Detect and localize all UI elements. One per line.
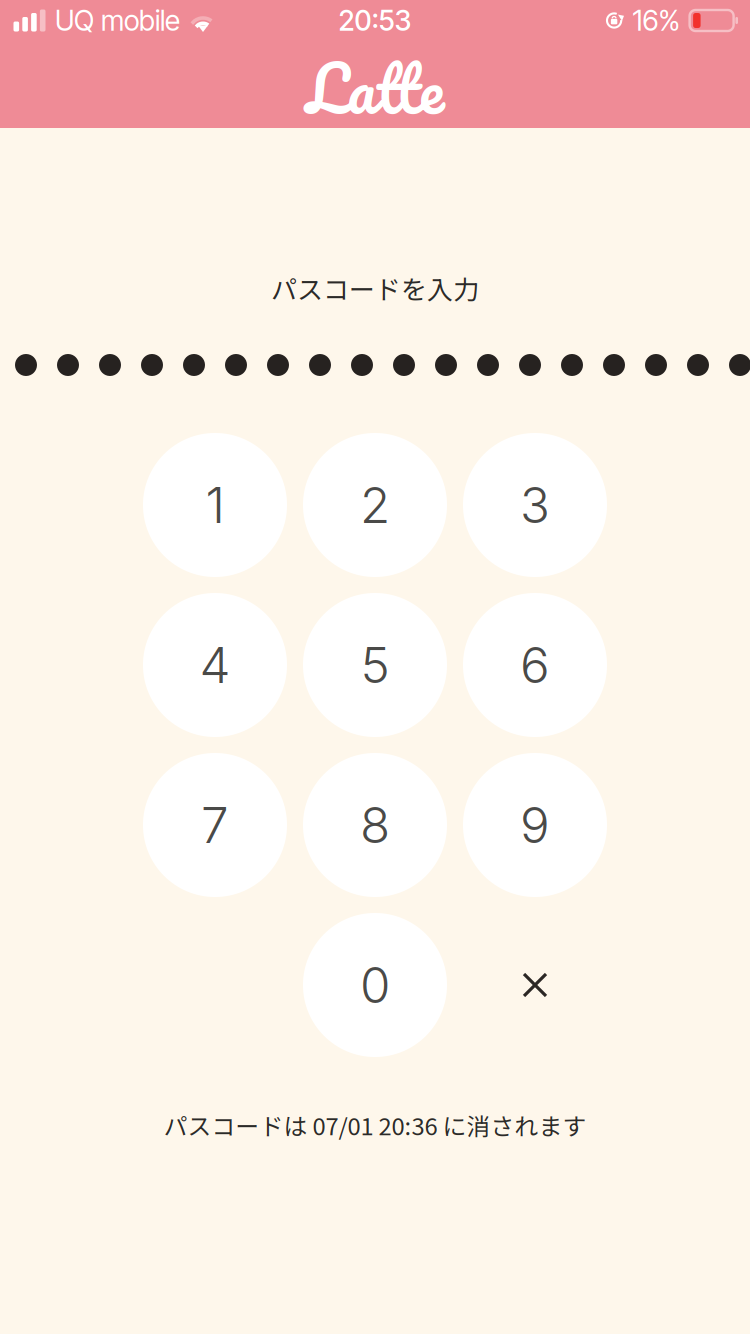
staticText: 16% (633, 4, 680, 37)
staticText: UQ mobile (55, 4, 180, 37)
staticText: Latte (306, 34, 444, 142)
button[interactable]: 7 (135, 745, 295, 905)
staticText: 8 (360, 795, 390, 855)
staticText: 7 (201, 795, 229, 855)
button[interactable]: 1 (135, 425, 295, 585)
staticText: 2 (360, 475, 390, 535)
staticText: 20:53 (338, 4, 411, 37)
button[interactable]: 8 (295, 745, 455, 905)
button[interactable]: 4 (135, 585, 295, 745)
button[interactable]: 9 (455, 745, 615, 905)
staticText: パスコードは 07/01 20:36 に消されます (163, 1108, 586, 1142)
staticText: 4 (199, 635, 230, 695)
button[interactable]: 6 (455, 585, 615, 745)
staticText: 9 (520, 795, 550, 855)
staticText: 5 (360, 635, 389, 695)
button[interactable]: 3 (455, 425, 615, 585)
staticText: 3 (520, 475, 550, 535)
staticText: 0 (360, 955, 390, 1015)
staticText: パスコードを入力 (271, 269, 479, 307)
button[interactable]: Delete (455, 905, 615, 1065)
staticText: 6 (520, 635, 550, 695)
staticText: 1 (205, 475, 224, 535)
button[interactable]: 5 (295, 585, 455, 745)
button[interactable]: 2 (295, 425, 455, 585)
button[interactable]: 0 (295, 905, 455, 1065)
